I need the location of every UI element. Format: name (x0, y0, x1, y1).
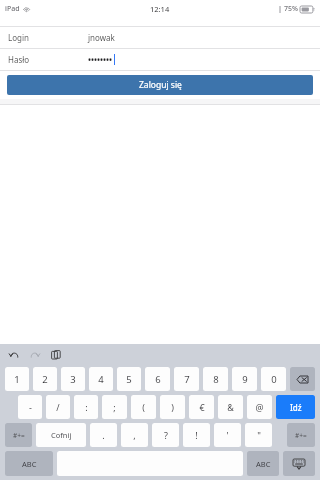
button[interactable]: " (245, 423, 272, 447)
button[interactable]: 5 (117, 367, 141, 391)
button[interactable]: , (121, 423, 148, 447)
staticText: : (85, 401, 88, 413)
button[interactable]: ! (183, 423, 210, 447)
button[interactable]: € (189, 395, 214, 419)
staticText: Zaloguj się (139, 79, 182, 91)
staticText: 7 (184, 373, 190, 386)
button[interactable]: Paste (48, 347, 64, 363)
staticText: 12:14 (150, 4, 170, 14)
button[interactable]: Backspace (290, 367, 315, 391)
button[interactable]: Zaloguj się (7, 75, 313, 95)
staticText: ' (226, 429, 229, 441)
button[interactable]: ) (160, 395, 185, 419)
button[interactable]: 4 (89, 367, 113, 391)
button[interactable]: Symbols (5, 423, 32, 447)
staticText: ) (171, 401, 174, 413)
button[interactable]: 3 (61, 367, 85, 391)
button[interactable]: ; (102, 395, 127, 419)
staticText: #+= (295, 431, 307, 440)
staticText: " (257, 429, 261, 441)
staticText: Idź (290, 402, 302, 413)
staticText: 1 (14, 373, 20, 386)
button[interactable]: Hasło (0, 49, 320, 70)
button[interactable]: ' (214, 423, 241, 447)
button[interactable]: ? (152, 423, 179, 447)
button[interactable]: 2 (33, 367, 57, 391)
button[interactable]: Undo (6, 347, 22, 363)
staticText: - (29, 401, 32, 413)
button[interactable]: Redo (27, 347, 43, 363)
staticText: 2 (42, 373, 48, 386)
staticText: € (199, 401, 205, 413)
button[interactable]: Hide keyboard (283, 451, 315, 476)
staticText: & (227, 401, 234, 413)
staticText: 9 (242, 373, 248, 386)
button[interactable]: - (18, 395, 42, 419)
staticText: ! (195, 429, 198, 441)
staticText: 8 (213, 373, 219, 386)
staticText: #+= (13, 431, 25, 440)
staticText: Cofnij (51, 430, 72, 440)
staticText: @ (255, 401, 264, 413)
button[interactable]: 8 (203, 367, 228, 391)
staticText: . (102, 429, 105, 441)
staticText: 0 (271, 373, 277, 386)
staticText: ABC (22, 459, 37, 469)
button[interactable]: & (218, 395, 243, 419)
button[interactable]: ABC (5, 451, 53, 476)
staticText: Login (8, 32, 88, 43)
button[interactable]: / (46, 395, 70, 419)
button[interactable]: Login (0, 27, 320, 48)
staticText: •••••••• (88, 54, 113, 65)
staticText: iPad (5, 4, 20, 14)
button[interactable]: : (74, 395, 98, 419)
button[interactable]: ( (131, 395, 156, 419)
button[interactable]: @ (247, 395, 272, 419)
staticText: , (133, 429, 136, 441)
button[interactable]: . (90, 423, 117, 447)
staticText: ( (142, 401, 145, 413)
staticText: Hasło (8, 54, 88, 65)
button[interactable]: 1 (5, 367, 29, 391)
staticText: ; (113, 401, 116, 413)
staticText: 5 (126, 373, 132, 386)
staticText: ABC (256, 459, 271, 469)
staticText: 4 (98, 373, 104, 386)
button[interactable]: 9 (232, 367, 257, 391)
staticText: 3 (70, 373, 76, 386)
button[interactable]: Symbols (287, 423, 315, 447)
staticText: / (56, 401, 60, 413)
button[interactable]: Cofnij (36, 423, 86, 447)
button[interactable]: ABC (247, 451, 279, 476)
button[interactable]: 6 (145, 367, 170, 391)
staticText: 6 (155, 373, 161, 386)
button[interactable]: 0 (261, 367, 286, 391)
staticText: ? (164, 429, 168, 441)
staticText: 75% (284, 4, 298, 14)
staticText: jnowak (88, 32, 115, 43)
button[interactable]: Idź (276, 395, 315, 419)
button[interactable]: 7 (174, 367, 199, 391)
